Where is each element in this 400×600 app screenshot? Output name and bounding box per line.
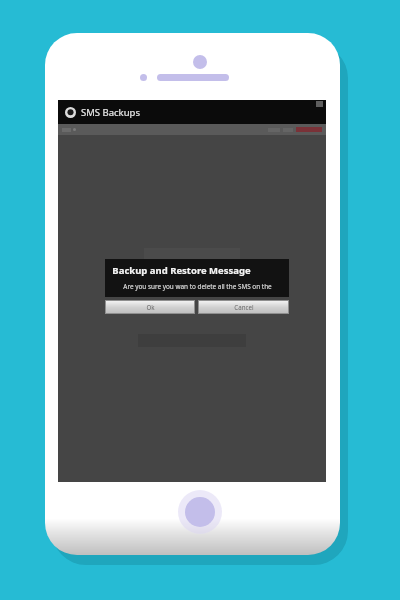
button[interactable]: Cancel — [199, 301, 288, 313]
staticText: Are you sure you wan to delete all the S… — [112, 282, 283, 291]
staticText: SMS Backups — [81, 106, 140, 119]
button[interactable]: Home — [178, 490, 222, 534]
staticText: Backup and Restore Message — [112, 264, 251, 277]
staticText: Ok — [146, 303, 155, 311]
button[interactable]: Ok — [106, 301, 194, 313]
staticText: Cancel — [234, 303, 254, 311]
